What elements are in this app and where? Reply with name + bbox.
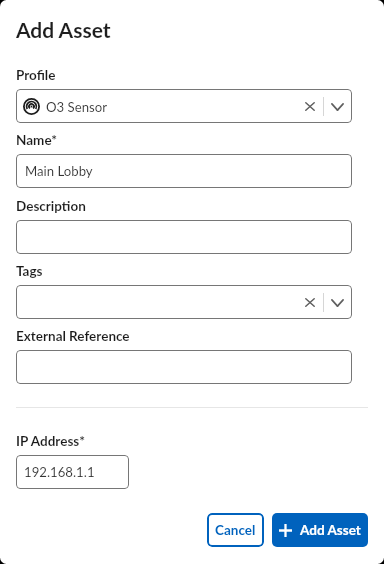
button[interactable]: 192.168.1.1 <box>16 455 129 489</box>
button[interactable]: O3 Sensor <box>16 89 352 123</box>
other: Open dropdown <box>331 299 344 307</box>
staticText: Main Lobby <box>25 163 93 179</box>
staticText: Cancel <box>215 522 256 538</box>
staticText: Add Asset <box>300 522 361 538</box>
staticText: 192.168.1.1 <box>24 464 95 480</box>
staticText: Tags <box>16 263 43 279</box>
staticText: Description <box>16 198 86 214</box>
staticText: Add Asset <box>16 17 111 42</box>
button[interactable] <box>16 350 352 384</box>
button[interactable]: Add Asset <box>272 513 368 547</box>
button[interactable]: Cancel <box>207 513 264 547</box>
button[interactable]: Main Lobby <box>16 154 352 188</box>
other: Clear <box>305 298 315 307</box>
other: Clear <box>305 102 315 111</box>
staticText: Name* <box>16 132 58 148</box>
button[interactable] <box>16 220 352 254</box>
staticText: IP Address* <box>16 433 85 449</box>
staticText: O3 Sensor <box>46 99 108 115</box>
staticText: External Reference <box>16 328 130 344</box>
other: Open dropdown <box>331 103 344 111</box>
button[interactable]: Clear <box>16 285 352 319</box>
staticText: Profile <box>16 67 56 83</box>
